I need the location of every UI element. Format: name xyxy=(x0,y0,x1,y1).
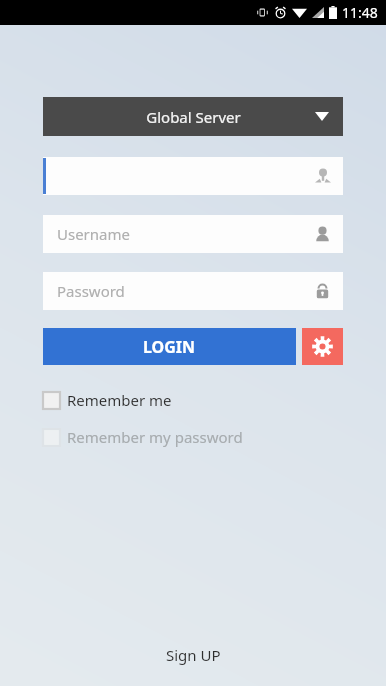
staticText: Global Server xyxy=(146,107,241,127)
staticText: Password xyxy=(57,281,125,301)
button[interactable]: Sign UP xyxy=(150,640,237,670)
staticText: Remember me xyxy=(67,390,172,410)
staticText: Remember my password xyxy=(67,427,243,447)
button[interactable]: Remember me xyxy=(43,387,184,413)
button[interactable]: Password xyxy=(43,272,343,310)
button[interactable]: Global Server xyxy=(43,97,343,136)
staticText: 11:48 xyxy=(342,3,378,22)
staticText: Sign UP xyxy=(166,645,221,665)
staticText: Username xyxy=(57,224,130,244)
button[interactable]: Remember my password xyxy=(43,424,255,450)
button[interactable]: LOGIN xyxy=(43,328,296,365)
button[interactable] xyxy=(43,157,343,195)
button[interactable]: Settings xyxy=(302,328,343,365)
button[interactable]: Username xyxy=(43,215,343,253)
staticText: LOGIN xyxy=(143,336,196,358)
